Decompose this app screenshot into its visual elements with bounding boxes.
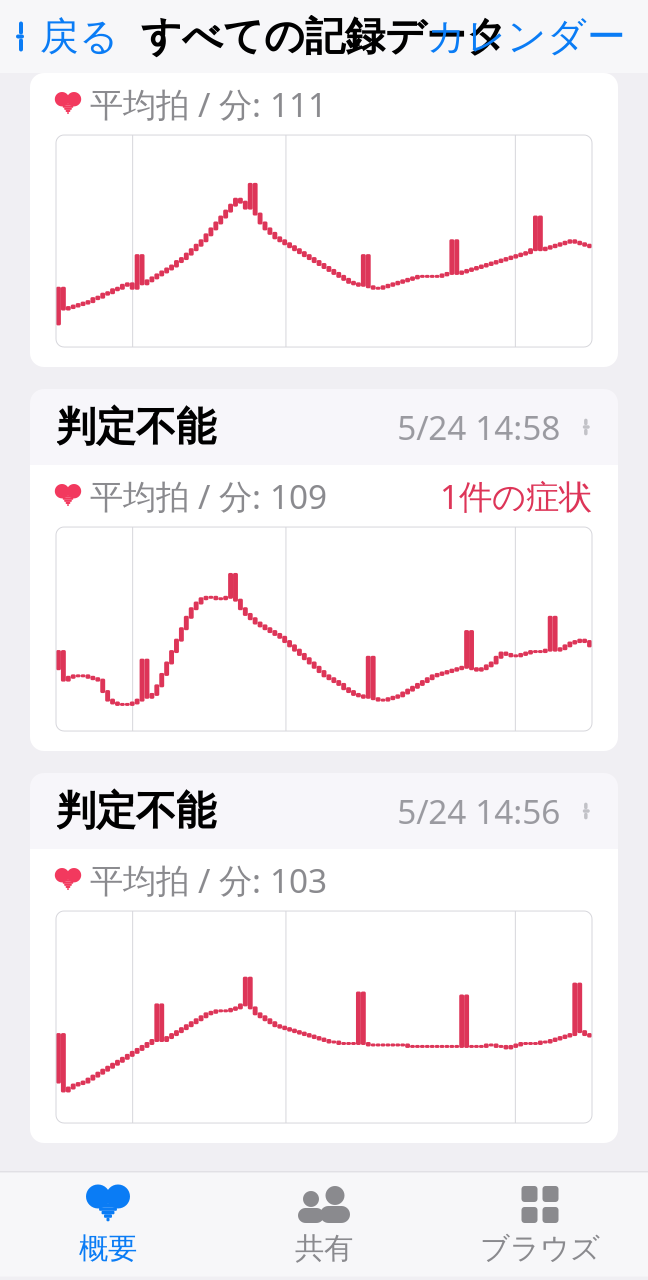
button[interactable]: 判定不能 [30, 389, 618, 465]
staticText: ブラウズ [480, 1230, 600, 1266]
button[interactable]: 戻る [0, 7, 119, 66]
staticText: 判定不能 [56, 402, 216, 451]
staticText: 平均拍 / 分: 111 [80, 82, 327, 126]
staticText: カレンダー [427, 13, 626, 60]
button[interactable]: 概要 [0, 1172, 216, 1276]
button[interactable]: 判定不能 [30, 773, 618, 849]
staticText: 平均拍 / 分: 103 [80, 858, 327, 902]
button[interactable]: 共有 [216, 1172, 432, 1276]
staticText: 共有 [295, 1230, 353, 1266]
staticText: 5/24 14:56 [397, 789, 560, 833]
button[interactable]: ブラウズ [432, 1172, 648, 1276]
staticText: 1件の症状 [440, 474, 592, 518]
staticText: 戻る [40, 13, 119, 60]
staticText: 概要 [79, 1230, 137, 1266]
staticText: 判定不能 [56, 786, 216, 835]
staticText: すべての記録データ [141, 12, 507, 61]
staticText: 5/24 14:58 [397, 405, 560, 449]
button[interactable]: カレンダー [427, 7, 648, 66]
staticText: 平均拍 / 分: 109 [80, 474, 327, 518]
